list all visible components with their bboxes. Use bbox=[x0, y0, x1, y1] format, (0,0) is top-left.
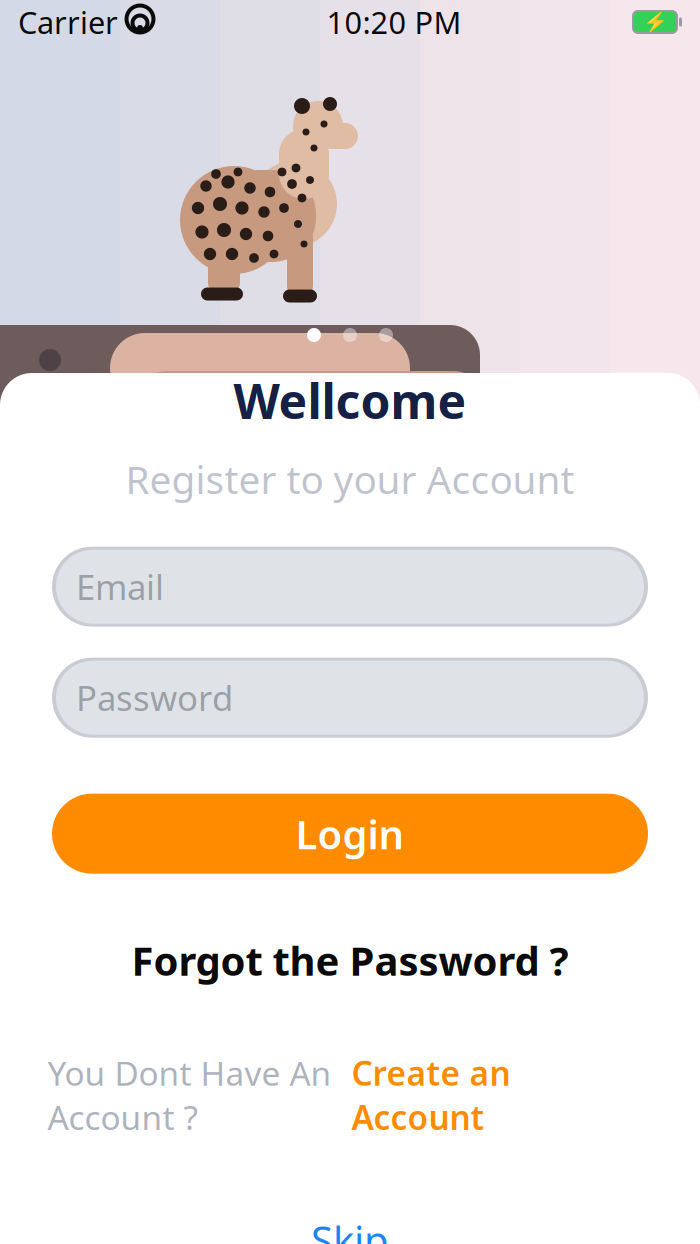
button[interactable]: Skip bbox=[285, 1203, 415, 1244]
staticText: Forgot the Password ? bbox=[131, 934, 568, 987]
staticText: Create an Account bbox=[351, 1051, 510, 1139]
staticText: ⚡ bbox=[642, 11, 667, 33]
staticText: Register to your Account bbox=[125, 453, 574, 505]
staticText: You Dont Have An Account ? bbox=[47, 1051, 331, 1139]
staticText: Wellcome bbox=[233, 369, 466, 432]
button[interactable]: Login bbox=[52, 794, 648, 874]
staticText: 10:20 PM bbox=[326, 2, 461, 42]
staticText: Skip bbox=[311, 1213, 389, 1244]
staticText: Carrier bbox=[18, 2, 118, 42]
button[interactable]: Create an Account bbox=[351, 1051, 510, 1139]
staticText: Email bbox=[76, 564, 164, 610]
staticText: Password bbox=[76, 675, 233, 721]
staticText: Login bbox=[295, 807, 404, 860]
staticText: Email bbox=[76, 564, 164, 610]
staticText: Password bbox=[76, 675, 233, 721]
button[interactable]: Forgot the Password ? bbox=[111, 924, 588, 997]
